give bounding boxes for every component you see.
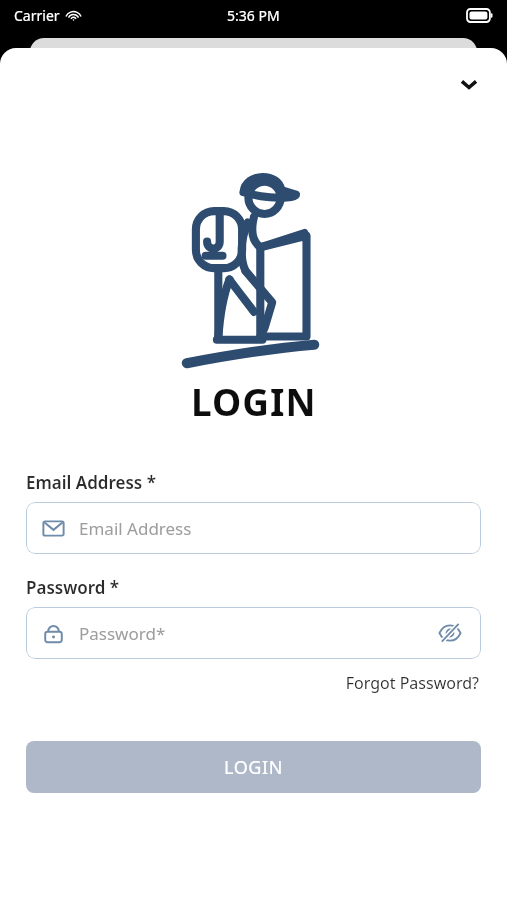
staticText: Forgot Password? [345,672,479,694]
staticText: LOGIN [224,755,284,780]
button[interactable]: LOGIN [26,741,481,793]
button[interactable]: Collapse [445,60,493,108]
staticText: Password* [79,622,166,645]
staticText: Email Address * [26,471,156,494]
staticText: LOGIN [191,376,317,426]
button[interactable]: Password* [26,607,481,659]
staticText: Email Address [79,517,192,540]
button[interactable]: Show password [435,618,465,648]
button[interactable]: Email Address [26,502,481,554]
staticText: Password * [26,576,120,599]
staticText: 5:36 PM [227,6,280,25]
button[interactable]: Forgot Password? [343,670,481,696]
staticText: Carrier [14,6,60,25]
